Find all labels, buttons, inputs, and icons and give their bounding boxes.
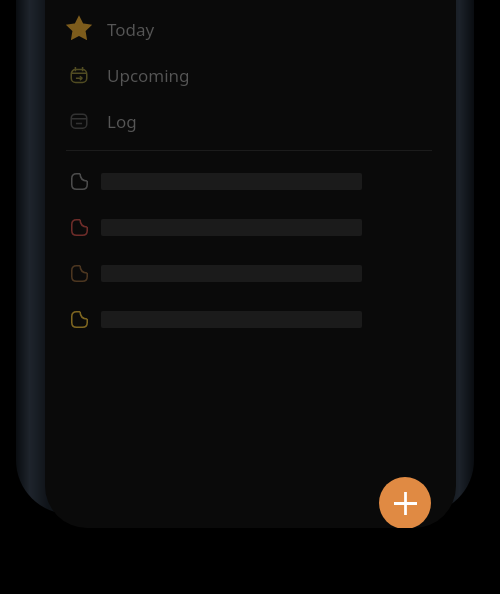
button[interactable] bbox=[45, 161, 456, 201]
staticText: Log bbox=[107, 110, 137, 133]
button[interactable] bbox=[45, 253, 456, 293]
button[interactable]: Today bbox=[45, 9, 456, 49]
button[interactable]: Log bbox=[45, 101, 456, 141]
staticText: Today bbox=[107, 18, 155, 41]
button[interactable] bbox=[45, 299, 456, 339]
button[interactable]: Add bbox=[379, 477, 431, 528]
staticText: Upcoming bbox=[107, 64, 190, 87]
button[interactable] bbox=[45, 207, 456, 247]
button[interactable]: Upcoming bbox=[45, 55, 456, 95]
